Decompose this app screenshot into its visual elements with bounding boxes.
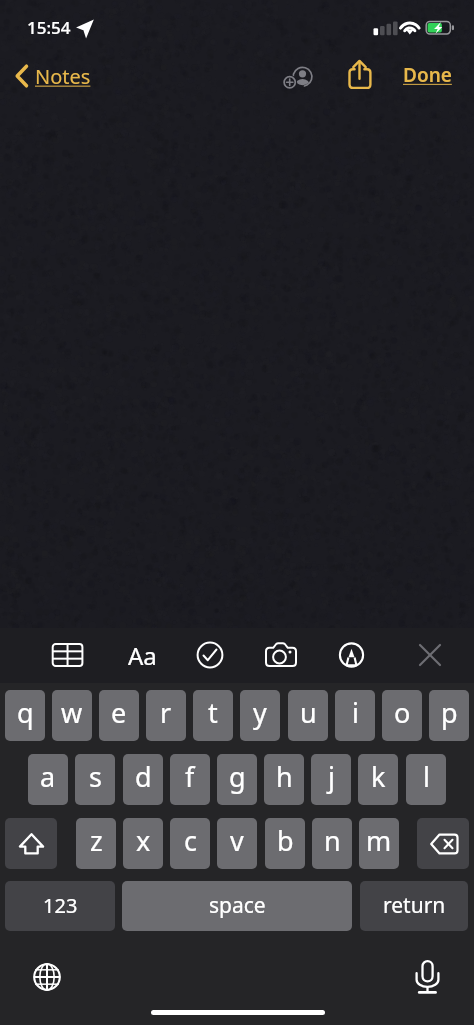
staticText: 123 (43, 892, 78, 919)
staticText: o (394, 694, 411, 731)
button[interactable]: r (146, 690, 186, 741)
staticText: d (135, 758, 152, 795)
staticText: 15:54 (27, 16, 71, 39)
button[interactable]: Change keyboard (27, 957, 67, 997)
staticText: g (229, 758, 246, 795)
button[interactable]: j (311, 754, 351, 805)
staticText: return (383, 891, 446, 920)
staticText: c (184, 822, 197, 859)
button[interactable]: Camera (261, 628, 301, 683)
button[interactable]: c (170, 818, 210, 869)
staticText: e (111, 694, 127, 731)
button[interactable]: x (123, 818, 163, 869)
button[interactable]: l (406, 754, 446, 805)
staticText: u (300, 694, 317, 731)
staticText: v (230, 822, 244, 859)
button[interactable]: e (99, 690, 139, 741)
button[interactable]: q (5, 690, 45, 741)
button[interactable]: y (240, 690, 280, 741)
staticText: n (324, 822, 341, 859)
staticText: j (328, 758, 335, 795)
staticText: r (160, 694, 172, 731)
button[interactable]: space (122, 881, 352, 931)
button[interactable]: Notes (11, 56, 97, 96)
button[interactable]: return (360, 881, 468, 931)
button[interactable]: Add people (282, 56, 323, 97)
staticText: i (352, 694, 359, 731)
staticText: p (441, 694, 458, 731)
button[interactable]: b (265, 818, 305, 869)
button[interactable]: o (382, 690, 422, 741)
button[interactable]: Markup (331, 628, 371, 683)
button[interactable]: d (123, 754, 163, 805)
button[interactable]: Backspace (417, 818, 469, 869)
button[interactable]: Share (342, 51, 378, 95)
button[interactable]: a (28, 754, 68, 805)
staticText: Done (403, 62, 452, 88)
button[interactable]: Done (394, 54, 461, 96)
button[interactable]: g (217, 754, 257, 805)
button[interactable]: v (217, 818, 257, 869)
button[interactable]: f (170, 754, 210, 805)
button[interactable]: Close keyboard (410, 628, 450, 683)
button[interactable]: 123 (5, 881, 115, 931)
staticText: m (366, 822, 392, 859)
button[interactable]: t (193, 690, 233, 741)
button[interactable]: m (359, 818, 399, 869)
button[interactable]: h (264, 754, 304, 805)
staticText: Notes (35, 63, 91, 90)
button[interactable]: k (358, 754, 398, 805)
button[interactable]: Shift (5, 818, 57, 869)
button[interactable]: z (76, 818, 116, 869)
button[interactable]: Checklist (190, 628, 230, 683)
staticText: y (253, 694, 267, 731)
staticText: z (90, 822, 103, 859)
staticText: x (136, 822, 151, 859)
staticText: h (276, 758, 293, 795)
staticText: t (208, 694, 218, 731)
staticText: w (61, 694, 83, 731)
staticText: q (17, 694, 34, 731)
button[interactable]: s (75, 754, 115, 805)
button[interactable]: w (52, 690, 92, 741)
staticText: Aa (128, 639, 157, 672)
staticText: s (89, 758, 102, 795)
staticText: a (40, 758, 56, 795)
staticText: b (277, 822, 294, 859)
button[interactable]: u (288, 690, 328, 741)
staticText: space (209, 891, 266, 920)
button[interactable]: Table (48, 628, 88, 683)
staticText: f (185, 758, 195, 795)
staticText: l (423, 758, 430, 795)
button[interactable]: i (335, 690, 375, 741)
button[interactable]: Dictation (407, 953, 447, 993)
button[interactable]: n (312, 818, 352, 869)
button[interactable]: p (429, 690, 469, 741)
staticText: k (371, 758, 386, 795)
button[interactable]: Text format (122, 628, 162, 683)
